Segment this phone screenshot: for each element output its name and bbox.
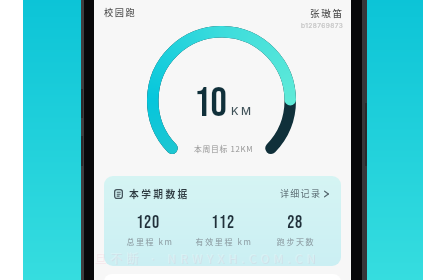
staticText: 120 <box>108 212 188 234</box>
button[interactable]: 张璈笛 <box>310 6 344 20</box>
staticText: 有效里程 km <box>184 236 264 248</box>
staticText: 跑步天数 <box>256 236 336 248</box>
staticText: b128769873 <box>301 22 344 30</box>
button[interactable]: 120 <box>108 212 188 234</box>
staticText: 112 <box>183 212 263 234</box>
staticText: KM <box>231 104 254 117</box>
other: Semester data <box>114 189 123 199</box>
staticText: 本周目标 12KM <box>194 143 254 154</box>
staticText: 总里程 km <box>110 236 190 248</box>
button[interactable]: 详细记录 <box>280 187 329 200</box>
button[interactable]: 112 <box>183 212 263 234</box>
staticText: 10 <box>194 79 227 128</box>
staticText: 本学期数据 <box>129 187 190 201</box>
staticText: 详细记录 <box>280 187 322 200</box>
button[interactable]: 28 <box>255 212 335 234</box>
staticText: 元旦不断 · NRWYXH.COM.CN <box>94 249 327 266</box>
staticText: 28 <box>255 212 335 234</box>
button[interactable]: 校园跑 <box>104 5 137 18</box>
staticText: 元旦不断 · NRWYXH.COM.CN <box>94 250 328 267</box>
